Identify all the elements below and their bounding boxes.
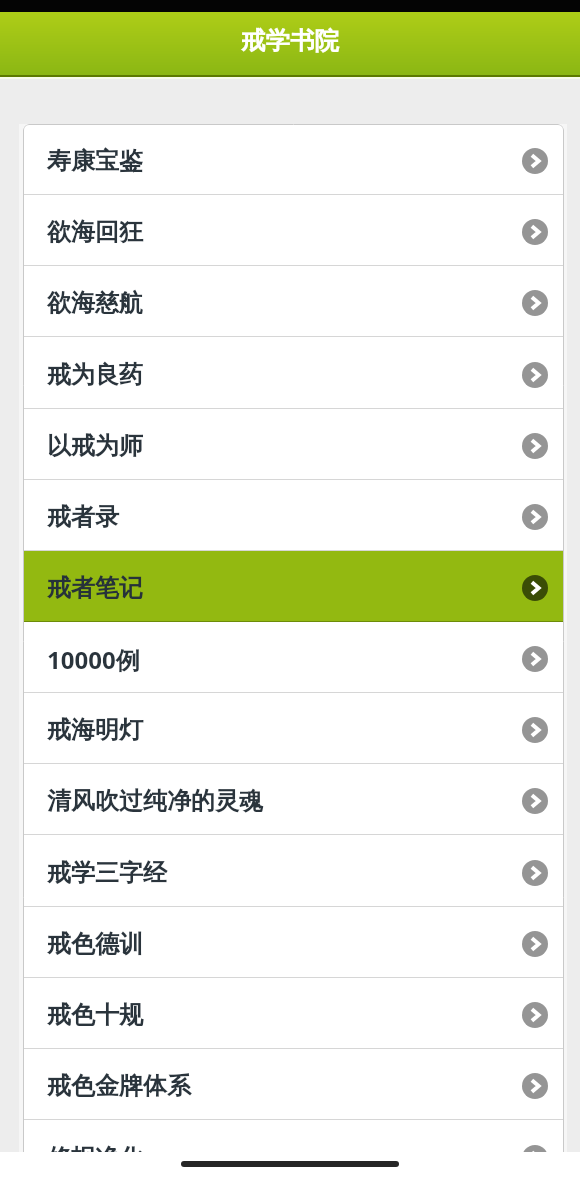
staticText: 戒色金牌体系 — [47, 1071, 191, 1101]
button[interactable]: 寿康宝鉴 — [23, 124, 564, 194]
button[interactable]: 戒色十规 — [23, 978, 564, 1048]
staticText: 戒海明灯 — [47, 715, 143, 745]
other: 打开 戒色德训 — [522, 929, 548, 955]
staticText: 清风吹过纯净的灵魂 — [47, 786, 263, 816]
staticText: 戒者录 — [47, 502, 119, 532]
other: 打开 以戒为师 — [522, 431, 548, 457]
button[interactable]: 清风吹过纯净的灵魂 — [23, 764, 564, 834]
button[interactable]: 戒海明灯 — [23, 693, 564, 763]
button[interactable]: 10000例 — [23, 622, 564, 692]
button[interactable]: 戒学三字经 — [23, 835, 564, 906]
other: 打开 清风吹过纯净的灵魂 — [522, 786, 548, 812]
button[interactable]: 欲海回狂 — [23, 195, 564, 265]
other: 打开 10000例 — [522, 644, 548, 670]
other: 打开 戒者笔记 — [522, 573, 548, 599]
staticText: 10000例 — [47, 643, 140, 676]
other: 打开 戒色十规 — [522, 1000, 548, 1026]
staticText: 戒色德训 — [47, 929, 143, 959]
other: 打开 戒为良药 — [522, 360, 548, 386]
button[interactable]: 修报净化 — [23, 1120, 564, 1152]
staticText: 寿康宝鉴 — [47, 146, 143, 176]
staticText: 戒学书院 — [241, 25, 339, 56]
staticText: 戒为良药 — [47, 360, 143, 390]
staticText: 欲海回狂 — [47, 217, 143, 247]
other: 打开 欲海慈航 — [522, 288, 548, 314]
other: 打开 戒学三字经 — [522, 858, 548, 884]
button[interactable]: 戒者录 — [23, 480, 564, 550]
staticText: 修报净化 — [47, 1143, 143, 1152]
other: 打开 戒者录 — [522, 502, 548, 528]
button[interactable]: 欲海慈航 — [23, 266, 564, 336]
staticText: 欲海慈航 — [47, 288, 143, 318]
other: 打开 欲海回狂 — [522, 217, 548, 243]
button[interactable]: 戒色金牌体系 — [23, 1049, 564, 1119]
staticText: 戒者笔记 — [47, 573, 143, 603]
staticText: 戒色十规 — [47, 1000, 143, 1030]
button[interactable]: 戒者笔记 — [23, 551, 564, 621]
staticText: 戒学三字经 — [47, 858, 167, 888]
other: 打开 戒海明灯 — [522, 715, 548, 741]
other: 打开 戒色金牌体系 — [522, 1071, 548, 1097]
other: 打开 修报净化 — [522, 1143, 548, 1152]
button[interactable]: 戒为良药 — [23, 337, 564, 408]
other: Home gesture handle — [181, 1161, 399, 1167]
staticText: 以戒为师 — [47, 431, 143, 461]
button[interactable]: 以戒为师 — [23, 409, 564, 479]
button[interactable]: 戒色德训 — [23, 907, 564, 977]
other: 打开 寿康宝鉴 — [522, 146, 548, 172]
